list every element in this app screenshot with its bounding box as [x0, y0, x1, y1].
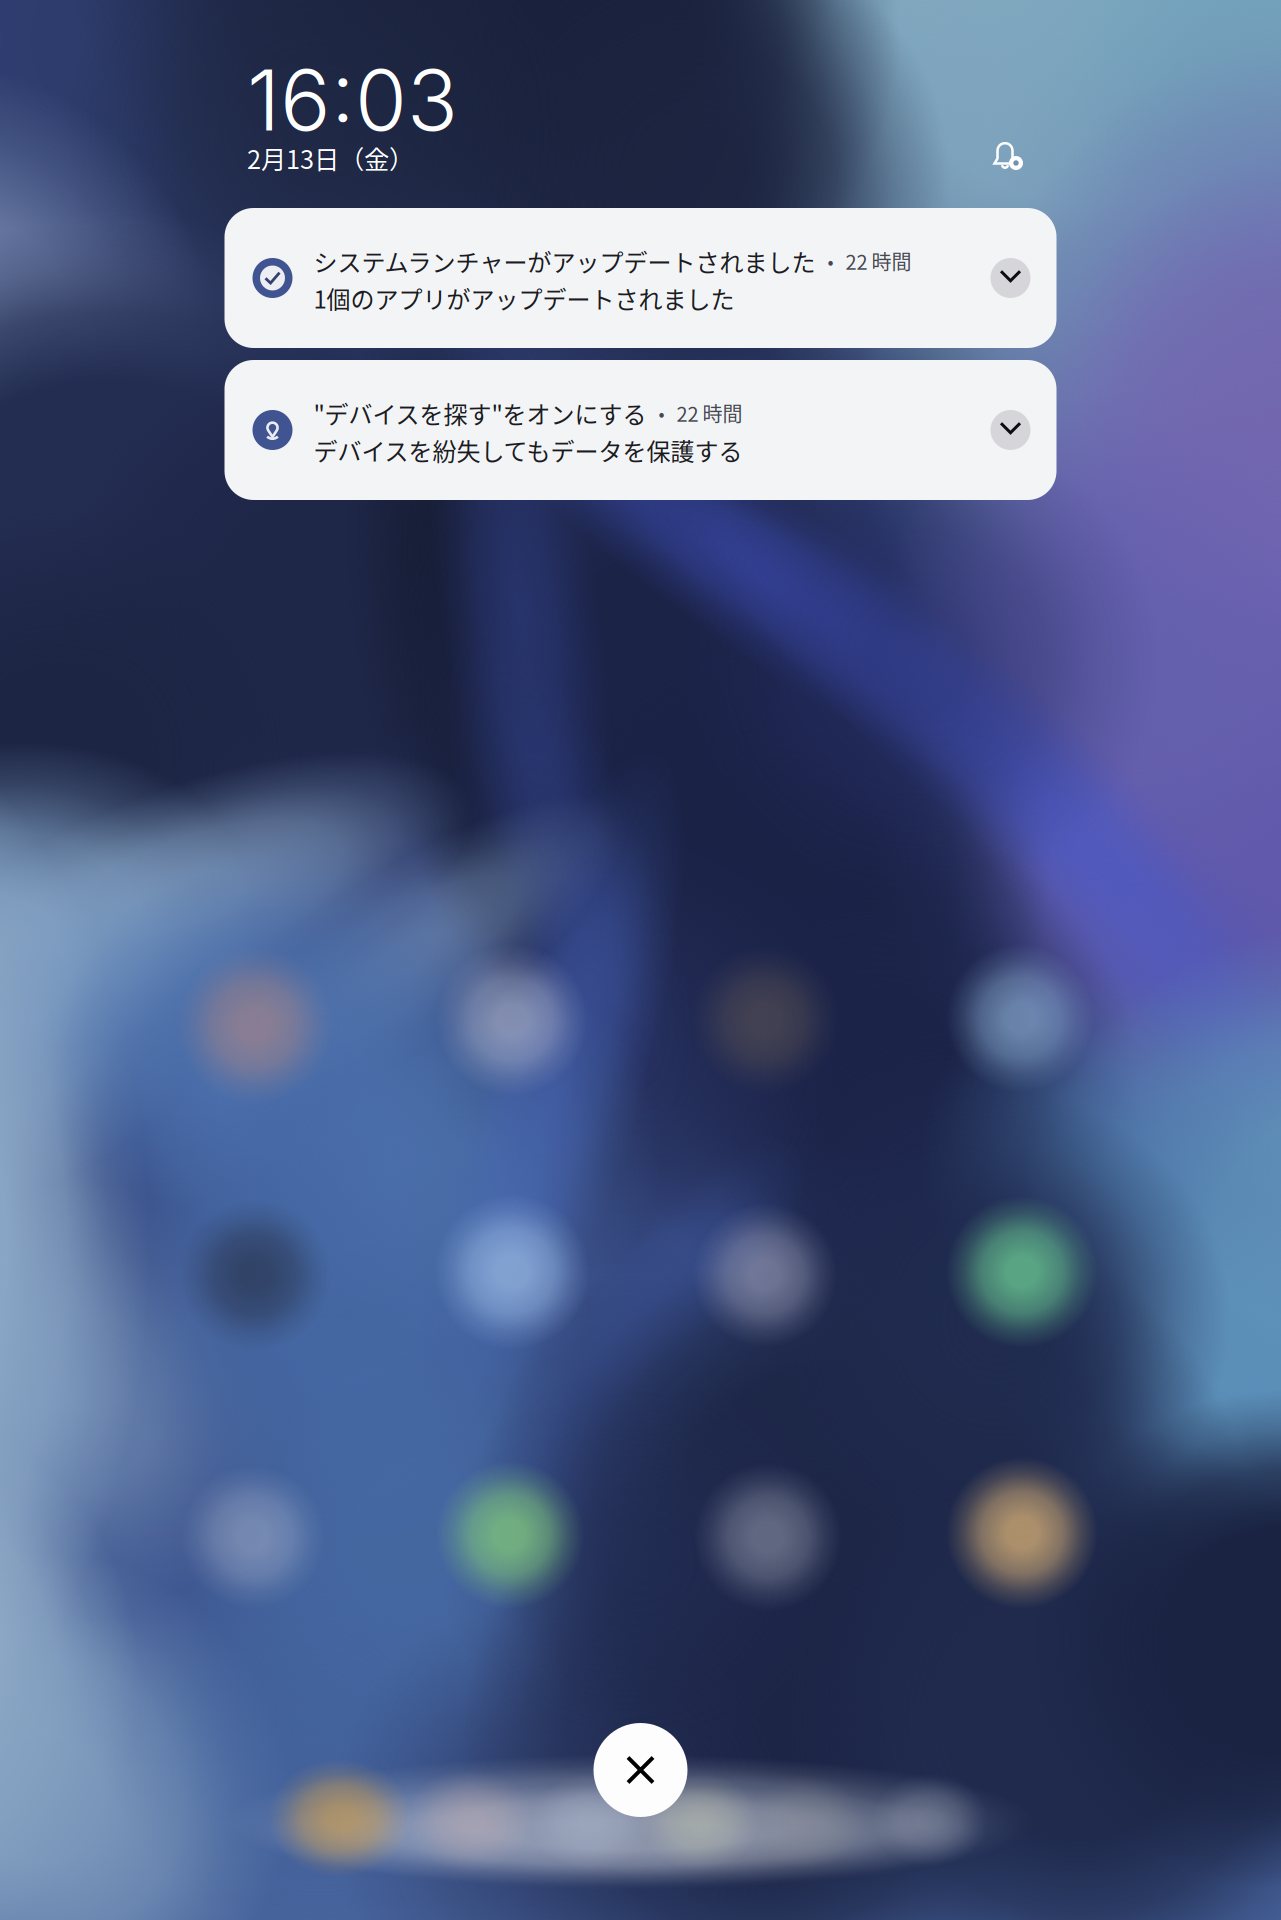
- staticText: 1個のアプリがアップデートされました: [313, 281, 734, 315]
- button[interactable]: "デバイスを探す"をオンにする: [224, 360, 1056, 500]
- staticText: •: [815, 248, 845, 274]
- staticText: 22 時間: [676, 398, 742, 427]
- button[interactable]: システムランチャーがアップデートされました: [224, 208, 1056, 348]
- staticText: 16:03: [247, 49, 458, 151]
- staticText: システムランチャーがアップデートされました: [313, 244, 815, 278]
- button[interactable]: Notification settings: [979, 127, 1035, 183]
- staticText: 2月13日（金）: [247, 140, 414, 176]
- staticText: "デバイスを探す"をオンにする: [313, 396, 646, 430]
- button[interactable]: Clear all notifications: [593, 1723, 687, 1817]
- staticText: デバイスを紛失してもデータを保護する: [313, 433, 742, 467]
- staticText: •: [646, 400, 676, 426]
- staticText: 22 時間: [845, 246, 911, 275]
